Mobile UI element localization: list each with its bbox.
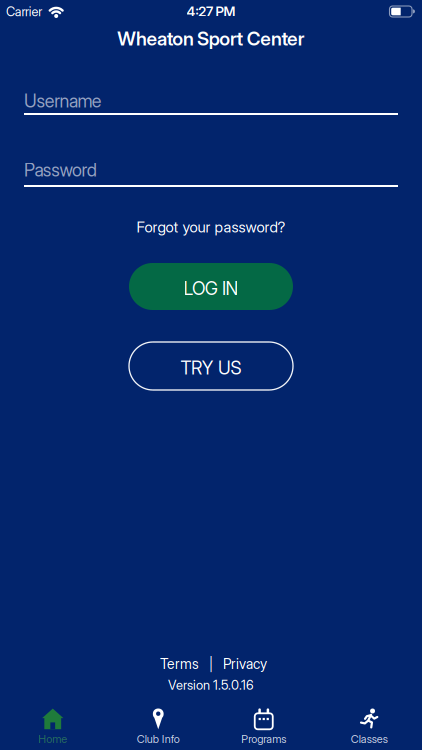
staticText: Programs	[241, 732, 286, 746]
button[interactable]: Terms	[160, 655, 199, 672]
button[interactable]: Username	[0, 89, 422, 115]
button[interactable]: LOG IN	[129, 263, 293, 310]
button[interactable]: Password	[0, 158, 422, 187]
staticText: Wheaton Sport Center	[117, 27, 305, 50]
button[interactable]: Forgot your password?	[136, 212, 285, 242]
staticText: Version 1.5.0.16	[168, 677, 254, 693]
staticText: TRY US	[180, 357, 241, 379]
staticText: Home	[38, 732, 67, 746]
staticText: Carrier	[6, 4, 42, 19]
button[interactable]: Programs	[211, 695, 316, 750]
staticText: 4:27 PM	[187, 3, 235, 20]
staticText: LOG IN	[183, 278, 238, 299]
staticText: Username	[24, 90, 102, 112]
staticText: Terms	[160, 655, 199, 672]
button[interactable]: Club Info	[105, 695, 211, 750]
button[interactable]: TRY US	[129, 342, 293, 390]
button[interactable]: Classes	[316, 695, 422, 750]
staticText: |	[209, 656, 213, 672]
button[interactable]: Home	[0, 695, 105, 750]
button[interactable]: Privacy	[223, 655, 267, 672]
staticText: Privacy	[223, 655, 267, 672]
staticText: Club Info	[137, 732, 180, 746]
staticText: Password	[24, 159, 97, 181]
staticText: Classes	[351, 732, 388, 746]
staticText: Forgot your password?	[136, 218, 285, 236]
